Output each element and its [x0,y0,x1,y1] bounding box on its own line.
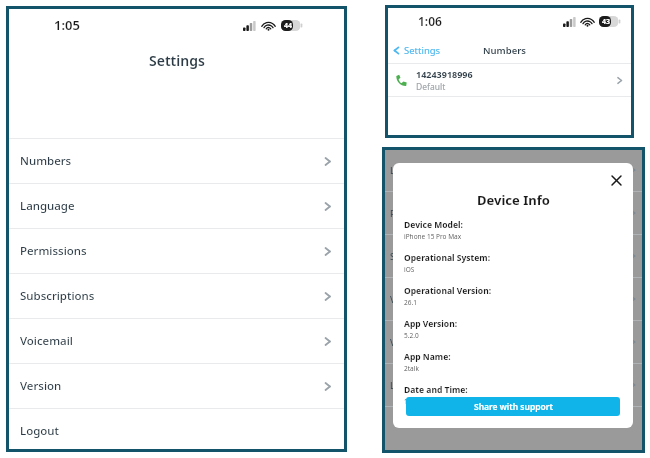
staticText: 14243918996 [416,68,473,80]
staticText: 43 [602,17,611,27]
button[interactable]: Logout [6,409,347,452]
button[interactable]: Subscriptions [6,274,347,318]
staticText: Language [390,164,433,176]
staticText: Permissions [390,207,443,219]
staticText: 44 [284,21,293,31]
staticText: Numbers [483,44,527,57]
staticText: Logout [20,423,59,439]
button[interactable]: Version [6,364,347,408]
button[interactable]: Permissions [6,229,347,273]
staticText: App Version: [404,318,458,330]
staticText: Voicemail [390,293,432,305]
staticText: 2talk [404,364,419,373]
staticText: Settings [149,51,205,70]
button[interactable]: 14243918996 [385,64,634,96]
button[interactable]: Numbers [6,139,347,183]
button[interactable]: Settings [392,44,441,57]
button[interactable]: Voicemail [6,319,347,363]
staticText: Default [416,81,446,93]
staticText: Language [20,198,75,214]
button[interactable]: Share with support [406,397,620,416]
staticText: 5.2.0 [404,331,419,340]
staticText: Numbers [20,153,72,169]
staticText: Subscriptions [390,250,449,262]
staticText: 11/19/2025, 1:06:13 PM [404,397,476,406]
staticText: 26.1 [404,298,417,307]
staticText: 1:06 [418,13,442,29]
staticText: Device Info [477,191,550,209]
staticText: Subscriptions [20,288,95,304]
staticText: Date and Time: [404,384,468,396]
staticText: Device Model: [404,219,463,231]
staticText: 1:05 [54,16,80,34]
staticText: iOS [404,265,415,274]
staticText: Settings [404,44,441,57]
staticText: Version [20,378,62,394]
staticText: Share with support [474,401,553,413]
staticText: Version [390,336,423,348]
staticText: Operational Version: [404,285,492,297]
staticText: Operational System: [404,252,491,264]
button[interactable]: Language [6,184,347,228]
button[interactable]: Close [607,171,625,189]
staticText: Logout [390,379,421,391]
staticText: Voicemail [20,333,73,349]
staticText: Permissions [20,243,87,259]
staticText: App Name: [404,351,451,363]
staticText: iPhone 15 Pro Max [404,232,462,241]
